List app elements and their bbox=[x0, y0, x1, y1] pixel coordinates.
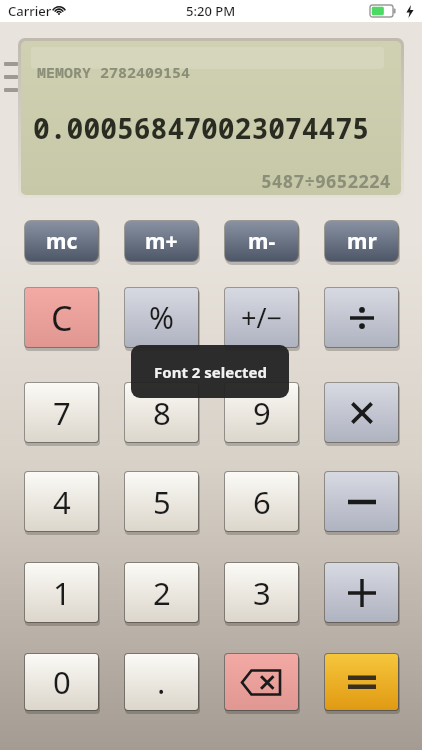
staticText: . bbox=[157, 661, 166, 703]
button[interactable]: +/− bbox=[224, 287, 299, 348]
button[interactable]: mr bbox=[324, 220, 399, 262]
staticText: 5487÷9652224 bbox=[261, 169, 391, 194]
staticText: mr bbox=[347, 227, 377, 256]
staticText: 9 bbox=[253, 392, 271, 434]
button[interactable]: % bbox=[124, 287, 199, 348]
button[interactable]: 6 bbox=[224, 471, 299, 532]
staticText: 0.000568470023074475 bbox=[33, 109, 370, 147]
button[interactable]: Multiply bbox=[324, 382, 399, 443]
staticText: 1 bbox=[53, 572, 71, 614]
staticText: Font 2 selected bbox=[154, 362, 267, 382]
button[interactable]: 4 bbox=[24, 471, 99, 532]
button[interactable]: mc bbox=[24, 220, 99, 262]
button[interactable]: m+ bbox=[124, 220, 199, 262]
button[interactable]: Backspace bbox=[224, 653, 299, 711]
button[interactable]: . bbox=[124, 653, 199, 711]
staticText: mc bbox=[46, 227, 78, 256]
staticText: m- bbox=[248, 227, 276, 256]
button[interactable]: 3 bbox=[224, 562, 299, 623]
staticText: Carrier bbox=[8, 2, 52, 20]
staticText: 2 bbox=[153, 572, 171, 614]
staticText: m+ bbox=[145, 227, 178, 256]
button[interactable]: 2 bbox=[124, 562, 199, 623]
button[interactable]: Equals bbox=[324, 653, 399, 711]
button[interactable]: Add bbox=[324, 562, 399, 623]
button[interactable]: MEMORY 2782409154 bbox=[21, 41, 401, 195]
staticText: 4 bbox=[53, 481, 71, 523]
button[interactable]: m- bbox=[224, 220, 299, 262]
staticText: 0 bbox=[53, 661, 71, 703]
button[interactable]: 9 bbox=[224, 382, 299, 443]
button[interactable]: 5 bbox=[124, 471, 199, 532]
staticText: MEMORY 2782409154 bbox=[37, 62, 191, 82]
button[interactable]: Menu bbox=[4, 62, 20, 92]
staticText: 5:20 PM bbox=[186, 2, 236, 20]
staticText: 6 bbox=[253, 481, 271, 523]
staticText: 3 bbox=[253, 572, 271, 614]
staticText: +/− bbox=[241, 299, 282, 336]
staticText: 5 bbox=[153, 481, 171, 523]
button[interactable]: 7 bbox=[24, 382, 99, 443]
button[interactable]: 0 bbox=[24, 653, 99, 711]
staticText: C bbox=[51, 295, 73, 341]
button[interactable]: C bbox=[24, 287, 99, 348]
button[interactable]: 1 bbox=[24, 562, 99, 623]
staticText: % bbox=[149, 297, 174, 338]
button[interactable]: Subtract bbox=[324, 471, 399, 532]
staticText: 7 bbox=[53, 392, 71, 434]
staticText: 8 bbox=[153, 392, 171, 434]
button[interactable]: Divide bbox=[324, 287, 399, 348]
button[interactable]: 8 bbox=[124, 382, 199, 443]
